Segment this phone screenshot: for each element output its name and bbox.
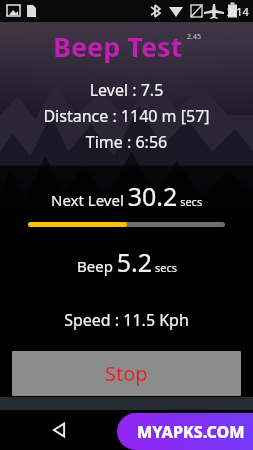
staticText: Stop	[105, 360, 148, 387]
staticText: Time : 6:56	[0, 131, 253, 153]
staticText: 2.45	[187, 32, 201, 42]
button[interactable]: Back	[42, 413, 76, 447]
staticText: Beep 5.2 secs	[77, 245, 177, 279]
staticText: Level : 7.5	[0, 79, 253, 101]
button[interactable]: Stop	[12, 351, 241, 396]
staticText: MYAPKS.COM	[137, 421, 245, 443]
staticText: Beep Test	[53, 28, 183, 65]
staticText: Speed : 11.5 Kph	[0, 309, 253, 331]
staticText: Next Level 30.2 secs	[51, 179, 203, 213]
staticText: 2:14	[227, 4, 249, 19]
staticText: Distance : 1140 m [57]	[0, 105, 253, 127]
